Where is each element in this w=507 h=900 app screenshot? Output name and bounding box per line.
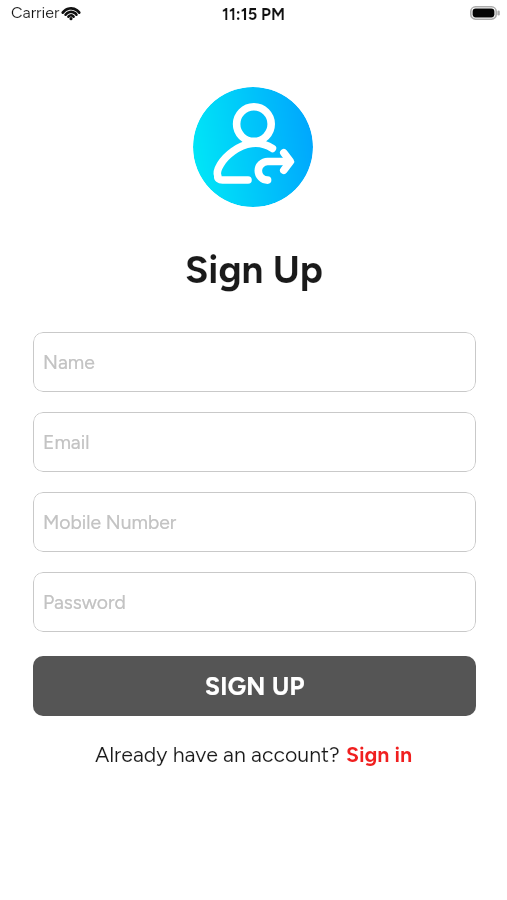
staticText: Carrier: [11, 3, 60, 22]
staticText: SIGN UP: [205, 672, 305, 701]
other: Sign up logo: [193, 87, 313, 207]
staticText: Password: [43, 591, 126, 614]
staticText: Name: [43, 351, 95, 374]
button[interactable]: SIGN UP: [33, 656, 476, 716]
button[interactable]: Mobile Number: [33, 492, 476, 552]
staticText: Email: [43, 431, 90, 454]
staticText: 11:15 PM: [222, 4, 286, 24]
staticText: Sign in: [346, 742, 413, 768]
staticText: Mobile Number: [43, 511, 177, 534]
staticText: Already have an account?: [95, 742, 346, 768]
button[interactable]: Sign in: [346, 742, 413, 768]
button[interactable]: Name: [33, 332, 476, 392]
button[interactable]: Password: [33, 572, 476, 632]
staticText: Sign Up: [185, 246, 323, 292]
button[interactable]: Email: [33, 412, 476, 472]
